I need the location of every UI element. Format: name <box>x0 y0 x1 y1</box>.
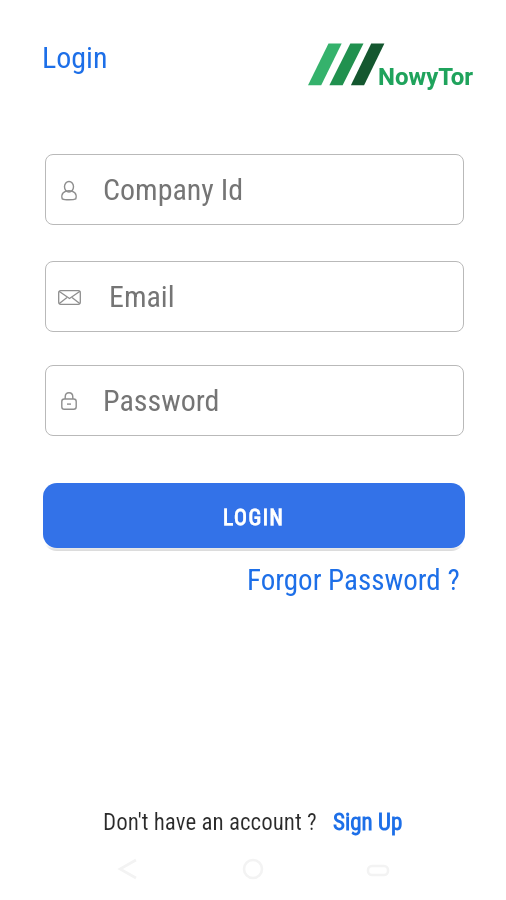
staticText: Email <box>109 279 175 314</box>
staticText: Company Id <box>103 172 244 207</box>
staticText: LOGIN <box>223 505 285 530</box>
button[interactable]: LOGIN <box>43 483 465 548</box>
button[interactable]: Forgor Password ? <box>247 563 460 597</box>
button[interactable]: Email <box>45 261 464 332</box>
button[interactable]: Company Id <box>45 154 464 225</box>
staticText: Sign Up <box>333 809 403 836</box>
button[interactable]: Password <box>45 365 464 436</box>
staticText: Don't have an account ? <box>103 809 317 836</box>
button[interactable]: Sign Up <box>333 809 403 836</box>
staticText: Password <box>103 383 220 418</box>
staticText: Forgor Password ? <box>247 563 460 597</box>
staticText: NowyTor <box>378 63 473 91</box>
staticText: Login <box>42 40 108 75</box>
